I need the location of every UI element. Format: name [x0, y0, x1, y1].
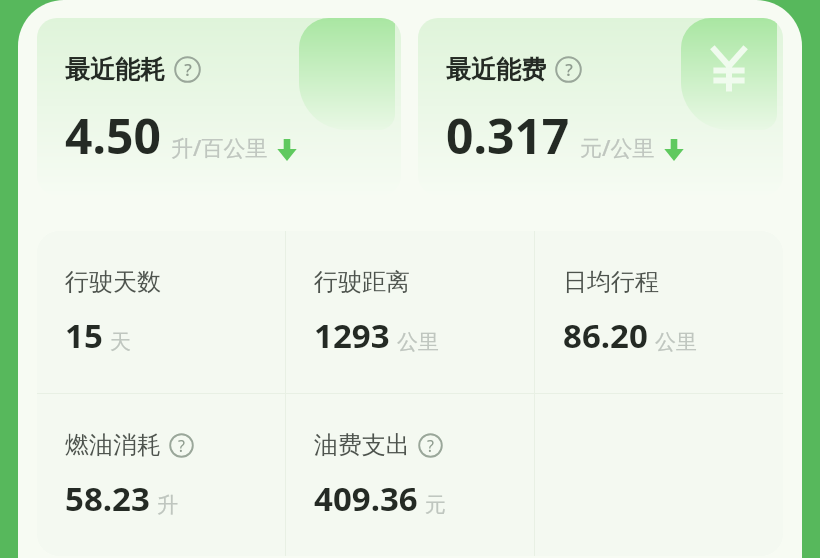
button[interactable]: 日均行程	[535, 231, 783, 393]
button[interactable]: 行驶距离	[286, 231, 534, 393]
staticText: 0.317	[446, 103, 570, 168]
button[interactable]: Help	[174, 56, 201, 83]
button[interactable]: 燃油消耗	[37, 394, 285, 556]
button[interactable]: Help	[555, 56, 582, 83]
staticText: 元/公里	[580, 132, 655, 162]
button[interactable]: 行驶天数	[37, 231, 285, 393]
button[interactable]: Help	[418, 433, 443, 458]
other: Decrease	[663, 139, 685, 161]
staticText: 最近能费	[446, 54, 546, 85]
button[interactable]: 油费支出	[286, 394, 534, 556]
staticText: ?	[184, 58, 192, 81]
staticText: 元	[425, 492, 446, 518]
staticText: 最近能耗	[65, 54, 165, 85]
staticText: 86.20	[563, 313, 648, 358]
button[interactable]: 最近能耗	[37, 18, 401, 195]
staticText: 公里	[397, 329, 439, 355]
button[interactable]: Help	[169, 433, 194, 458]
staticText: 天	[110, 329, 131, 355]
staticText: 15	[65, 313, 103, 358]
staticText: 油费支出	[314, 430, 410, 460]
staticText: 1293	[314, 313, 390, 358]
staticText: 升	[157, 492, 178, 518]
button[interactable]: 最近能费	[418, 18, 783, 195]
staticText: 升/百公里	[171, 132, 268, 162]
staticText: 日均行程	[563, 267, 659, 297]
other: Decrease	[276, 139, 298, 161]
staticText: ?	[178, 435, 185, 457]
staticText: 行驶天数	[65, 267, 161, 297]
staticText: 公里	[655, 329, 697, 355]
staticText: 燃油消耗	[65, 430, 161, 460]
staticText: 58.23	[65, 476, 150, 521]
staticText: 行驶距离	[314, 267, 410, 297]
staticText: 409.36	[314, 476, 418, 521]
staticText: 4.50	[65, 103, 161, 168]
staticText: ?	[427, 435, 434, 457]
staticText: ?	[565, 58, 573, 81]
